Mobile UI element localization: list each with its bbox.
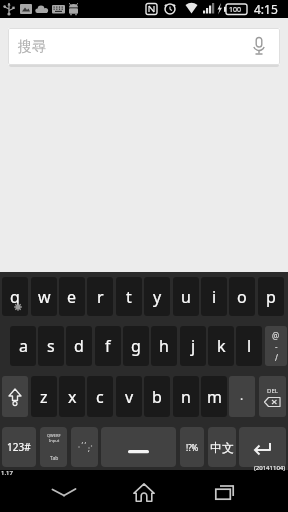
staticText: - <box>275 341 278 352</box>
staticText: k <box>217 335 226 357</box>
button[interactable]: !?% <box>180 427 204 467</box>
button[interactable]: v <box>116 376 142 417</box>
button[interactable]: e <box>59 277 85 316</box>
button[interactable]: 123# <box>2 427 36 467</box>
button[interactable]: f <box>95 326 121 366</box>
staticText: 中文 <box>210 440 234 455</box>
button[interactable]: p <box>258 277 284 316</box>
staticText: w <box>38 286 51 308</box>
staticText: o <box>237 286 247 308</box>
button[interactable]: l <box>236 326 262 366</box>
button[interactable]: q <box>2 277 28 316</box>
button[interactable]: h <box>151 326 177 366</box>
staticText: Input <box>49 438 60 443</box>
staticText: g <box>131 335 141 357</box>
button[interactable]: QWERF <box>40 427 67 467</box>
staticText: q <box>10 286 20 308</box>
button[interactable]: u <box>173 277 199 316</box>
staticText: j <box>191 335 196 357</box>
button[interactable] <box>101 427 176 467</box>
button[interactable]: d <box>66 326 92 366</box>
staticText: x <box>68 386 77 408</box>
staticText: i <box>212 286 217 308</box>
staticText: y <box>153 286 162 308</box>
button[interactable]: z <box>31 376 57 417</box>
button[interactable]: 中文 <box>208 427 236 467</box>
button[interactable]: k <box>208 326 234 366</box>
button[interactable] <box>2 376 28 417</box>
staticText: p <box>266 286 276 308</box>
staticText: 4:15 <box>254 1 278 17</box>
button[interactable] <box>120 474 168 510</box>
button[interactable]: y <box>144 277 170 316</box>
button[interactable]: DEL <box>259 376 286 417</box>
button[interactable]: j <box>180 326 206 366</box>
button[interactable]: c <box>87 376 113 417</box>
button[interactable]: 搜尋 <box>8 28 280 65</box>
staticText: . <box>240 387 244 403</box>
staticText: DEL <box>267 387 278 395</box>
button[interactable]: t <box>116 277 142 316</box>
staticText: 123# <box>7 440 31 454</box>
staticText: u <box>181 286 191 308</box>
button[interactable] <box>40 474 88 510</box>
staticText: / <box>275 352 278 363</box>
button[interactable]: g <box>123 326 149 366</box>
staticText: n <box>181 386 191 408</box>
button[interactable] <box>200 474 248 510</box>
staticText: s <box>47 335 55 357</box>
button[interactable]: . <box>229 376 255 417</box>
button[interactable]: s <box>38 326 64 366</box>
button[interactable]: m <box>201 376 227 417</box>
staticText: (20141104) <box>254 464 286 472</box>
staticText: b <box>152 386 162 408</box>
button[interactable]: w <box>31 277 57 316</box>
button[interactable]: i <box>201 277 227 316</box>
staticText: l <box>247 335 252 357</box>
staticText: a <box>19 335 28 357</box>
staticText: c <box>96 386 104 408</box>
button[interactable] <box>71 427 98 467</box>
staticText: f <box>105 335 111 357</box>
staticText: 搜尋 <box>18 38 46 56</box>
staticText: Tab <box>50 455 59 462</box>
button[interactable]: a <box>10 326 36 366</box>
button[interactable]: b <box>144 376 170 417</box>
button[interactable]: n <box>173 376 199 417</box>
staticText: t <box>126 286 132 308</box>
button[interactable]: r <box>87 277 113 316</box>
button[interactable]: o <box>229 277 255 316</box>
staticText: z <box>40 386 48 408</box>
button[interactable]: @ <box>265 326 287 366</box>
staticText: e <box>67 286 77 308</box>
staticText: m <box>207 386 222 408</box>
staticText: r <box>97 286 104 308</box>
staticText: 1.17 <box>1 469 13 477</box>
button[interactable]: x <box>59 376 85 417</box>
staticText: QWERF <box>47 433 61 438</box>
staticText: h <box>159 335 169 357</box>
staticText: d <box>74 335 84 357</box>
staticText: !?% <box>186 442 199 453</box>
staticText: 100 <box>229 5 242 15</box>
staticText: @ <box>272 330 280 341</box>
staticText: v <box>125 386 134 408</box>
button[interactable] <box>239 427 286 467</box>
